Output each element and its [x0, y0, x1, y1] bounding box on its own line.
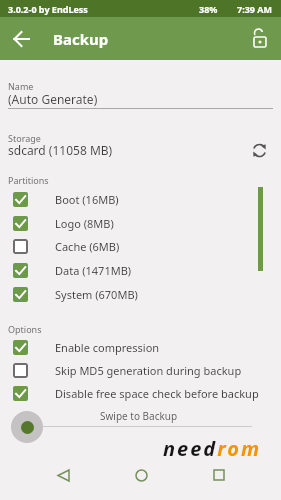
button[interactable]: Data (1471MB)	[0, 259, 281, 282]
staticText: Swipe to Backup	[100, 409, 178, 423]
staticText: 3.0.2-0 by EndLess	[8, 3, 88, 15]
staticText: Disable free space check before backup	[55, 386, 259, 401]
staticText: (Auto Generate)	[8, 91, 98, 107]
staticText: Cache (6MB)	[55, 239, 120, 254]
staticText: System (670MB)	[55, 287, 138, 302]
staticText: Data (1471MB)	[55, 263, 132, 278]
staticText: Enable compression	[55, 340, 160, 355]
button[interactable]	[193, 458, 245, 492]
button[interactable]: sdcard (11058 MB)	[0, 141, 281, 161]
staticText: Storage	[8, 132, 41, 144]
button[interactable]	[248, 139, 270, 161]
staticText: needrom	[163, 435, 262, 462]
button[interactable]	[244, 22, 276, 54]
button[interactable]: Boot (16MB)	[0, 188, 281, 211]
staticText: Partitions	[8, 174, 49, 186]
staticText: Skip MD5 generation during backup	[55, 363, 242, 378]
staticText: 7:39 AM	[237, 3, 273, 15]
button[interactable]: (Auto Generate)	[0, 90, 281, 110]
button[interactable]	[11, 411, 43, 443]
button[interactable]: Cache (6MB)	[0, 235, 281, 258]
button[interactable]	[115, 458, 167, 492]
staticText: Logo (8MB)	[55, 216, 114, 231]
button[interactable]	[6, 23, 37, 54]
button[interactable]: Disable free space check before backup	[0, 382, 281, 405]
button[interactable]: System (670MB)	[0, 283, 281, 306]
staticText: sdcard (11058 MB)	[8, 142, 113, 158]
staticText: Name	[8, 80, 34, 92]
staticText: Boot (16MB)	[55, 192, 119, 207]
button[interactable]	[37, 458, 89, 492]
staticText: Backup	[53, 29, 109, 49]
button[interactable]: Enable compression	[0, 336, 281, 359]
button[interactable]: Skip MD5 generation during backup	[0, 359, 281, 382]
button[interactable]: Logo (8MB)	[0, 212, 281, 235]
staticText: 38%	[199, 3, 218, 15]
staticText: Options	[8, 323, 42, 335]
